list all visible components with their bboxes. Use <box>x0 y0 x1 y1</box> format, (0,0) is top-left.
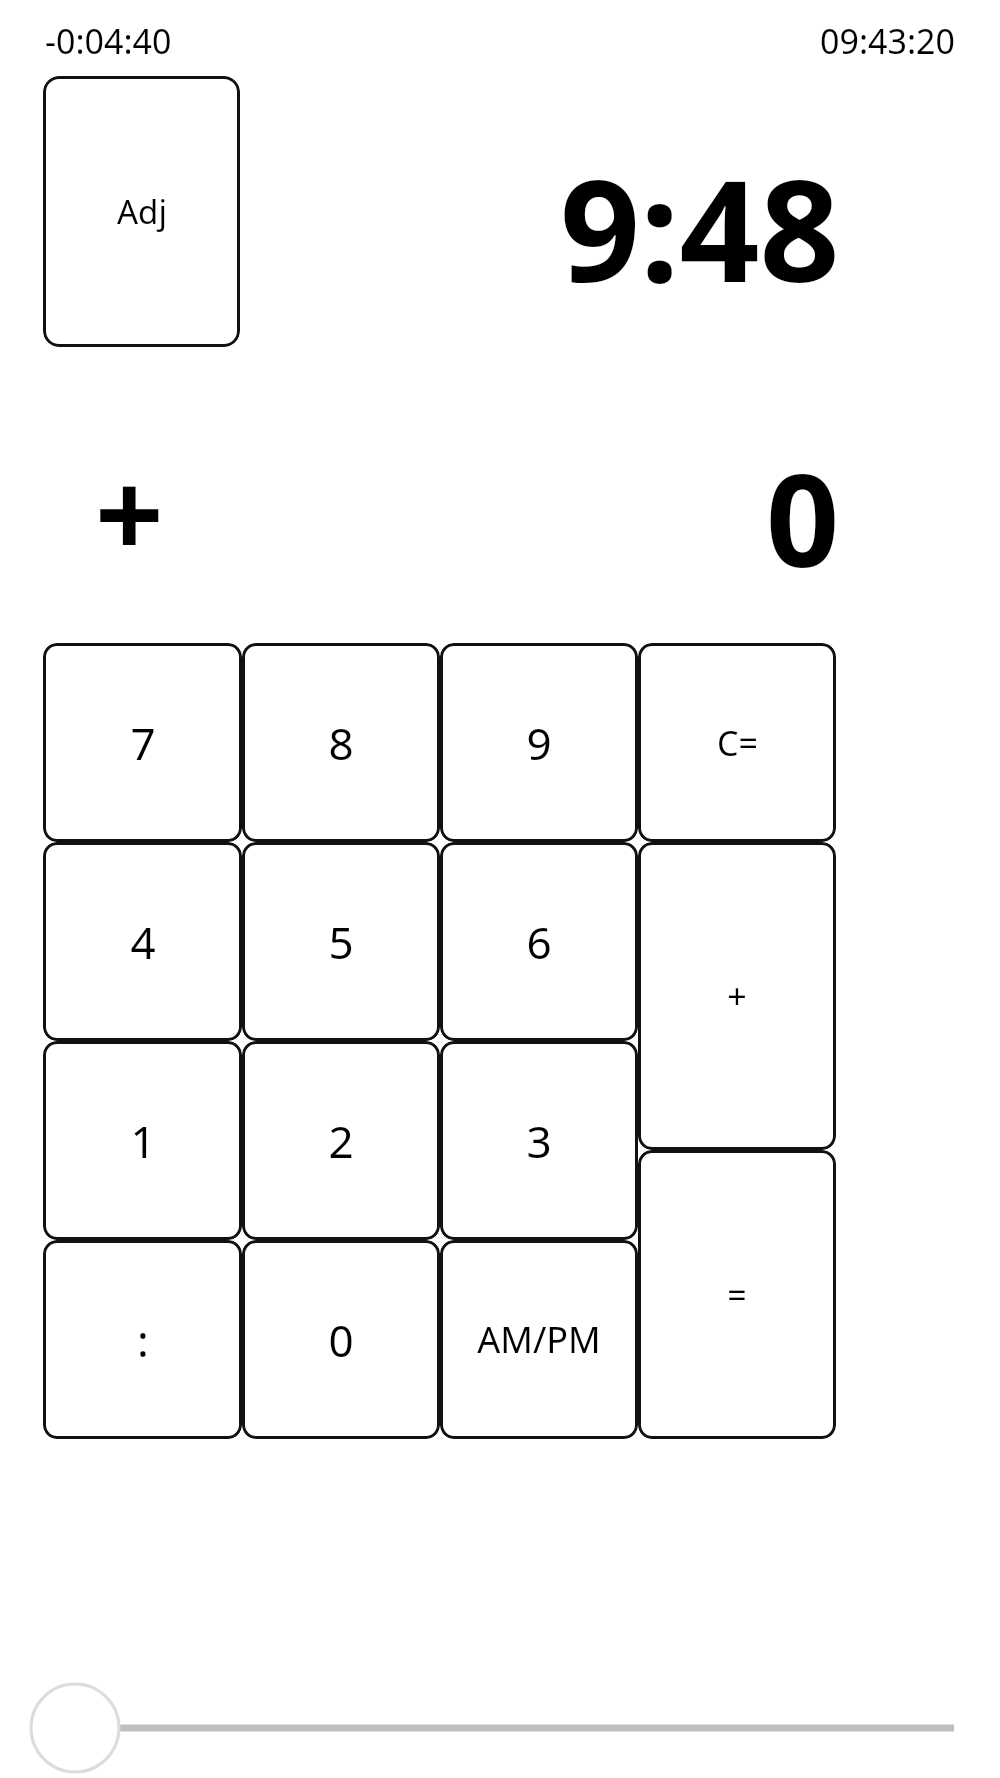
button[interactable]: Adj <box>43 76 240 347</box>
staticText: 9:48 <box>560 132 840 323</box>
staticText: + <box>95 430 164 593</box>
staticText: 7 <box>130 713 156 773</box>
staticText: 0 <box>328 1310 354 1370</box>
button[interactable]: + <box>638 842 836 1150</box>
staticText: 09:43:20 <box>820 18 955 64</box>
staticText: -0:04:40 <box>45 18 172 64</box>
button[interactable]: C= <box>638 643 836 842</box>
staticText: 4 <box>130 912 156 972</box>
button[interactable]: 8 <box>242 643 440 842</box>
staticText: 9 <box>526 713 552 773</box>
staticText: 5 <box>328 912 354 972</box>
staticText: C= <box>717 720 758 766</box>
staticText: 6 <box>526 912 552 972</box>
staticText: : <box>137 1310 149 1370</box>
button[interactable]: Value slider <box>0 1658 1000 1778</box>
staticText: 8 <box>328 713 354 773</box>
staticText: Adj <box>117 189 167 234</box>
button[interactable]: AM/PM <box>440 1240 638 1439</box>
button[interactable]: 5 <box>242 842 440 1041</box>
button[interactable]: 6 <box>440 842 638 1041</box>
staticText: 2 <box>328 1111 354 1171</box>
staticText: = <box>727 1272 747 1318</box>
button[interactable]: 2 <box>242 1041 440 1240</box>
button[interactable]: 9 <box>440 643 638 842</box>
button[interactable]: 1 <box>43 1041 242 1240</box>
button[interactable]: = <box>638 1150 836 1439</box>
button[interactable]: 3 <box>440 1041 638 1240</box>
button[interactable]: : <box>43 1240 242 1439</box>
button[interactable]: 4 <box>43 842 242 1041</box>
staticText: + <box>727 973 747 1019</box>
button[interactable]: 7 <box>43 643 242 842</box>
staticText: 1 <box>130 1111 156 1171</box>
button[interactable]: 0 <box>242 1240 440 1439</box>
staticText: AM/PM <box>477 1315 601 1364</box>
staticText: 3 <box>526 1111 552 1171</box>
staticText: 0 <box>766 430 840 604</box>
